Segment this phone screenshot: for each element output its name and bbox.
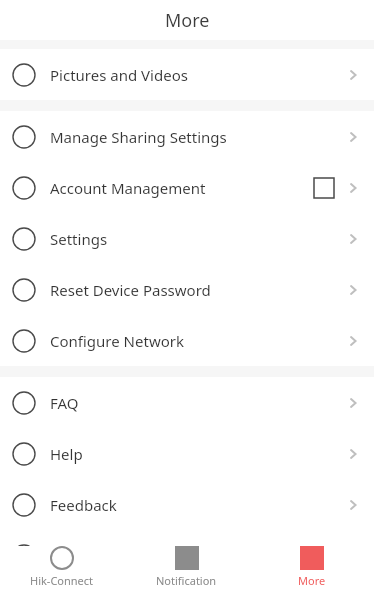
button[interactable]: Configure Network <box>0 315 374 366</box>
button[interactable]: Account Management <box>0 162 374 213</box>
staticText: Account Management <box>50 178 206 198</box>
button[interactable]: Settings <box>0 213 374 264</box>
staticText: Settings <box>50 229 108 249</box>
button[interactable]: FAQ <box>0 377 374 428</box>
staticText: Hik-Connect <box>30 573 94 588</box>
staticText: Reset Device Password <box>50 280 211 300</box>
button[interactable]: Feedback <box>0 479 374 530</box>
staticText: More <box>298 573 326 588</box>
button[interactable]: Help <box>0 428 374 479</box>
button[interactable]: Pictures and Videos <box>0 49 374 100</box>
staticText: Notification <box>156 573 217 588</box>
button[interactable]: Manage Sharing Settings <box>0 111 374 162</box>
staticText: More <box>165 8 210 33</box>
staticText: Manage Sharing Settings <box>50 127 227 147</box>
button[interactable]: More <box>249 546 374 588</box>
staticText: Pictures and Videos <box>50 65 188 85</box>
staticText: Help <box>50 444 83 464</box>
staticText: Feedback <box>50 495 117 515</box>
button[interactable]: About <box>0 530 374 581</box>
button[interactable]: Reset Device Password <box>0 264 374 315</box>
button[interactable]: Hik-Connect <box>0 546 124 588</box>
staticText: About <box>50 546 93 566</box>
staticText: Configure Network <box>50 331 184 351</box>
button[interactable]: Notification <box>124 546 249 588</box>
staticText: FAQ <box>50 393 79 413</box>
